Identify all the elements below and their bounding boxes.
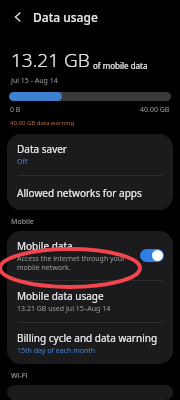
- button[interactable]: Back: [8, 7, 28, 27]
- staticText: Data saver: [17, 142, 67, 156]
- staticText: 40.00 GB: [140, 105, 170, 115]
- button[interactable]: Billing cycle and data warning: [7, 323, 173, 364]
- staticText: Access the internet through your mobile …: [17, 254, 134, 272]
- staticText: Mobile data: [17, 239, 73, 253]
- staticText: Allowed networks for apps: [17, 186, 142, 200]
- staticText: 40.00 GB data warning: [10, 119, 75, 127]
- button[interactable]: Wi-Fi data usage: [7, 385, 173, 400]
- staticText: 0 B: [10, 105, 21, 115]
- staticText: 13.21 GB: [11, 47, 90, 73]
- button[interactable]: Mobile data: [7, 231, 173, 280]
- staticText: Off: [17, 157, 28, 167]
- staticText: 13.21 GB used Jul 15–Aug 14: [17, 304, 111, 314]
- staticText: Billing cycle and data warning: [17, 331, 158, 345]
- button[interactable]: Mobile data toggle: [140, 249, 164, 262]
- button[interactable]: Allowed networks for apps: [7, 176, 173, 210]
- button[interactable]: Data saver: [7, 134, 173, 175]
- staticText: 15th day of each month: [17, 346, 96, 356]
- staticText: Mobile: [11, 217, 34, 227]
- staticText: Wi-Fi: [11, 371, 28, 381]
- staticText: of mobile data: [93, 60, 148, 71]
- staticText: Data usage: [33, 9, 98, 25]
- button[interactable]: Mobile data usage: [7, 281, 173, 322]
- staticText: Mobile data usage: [17, 289, 104, 303]
- staticText: Jul 15 - Aug 14: [11, 76, 58, 86]
